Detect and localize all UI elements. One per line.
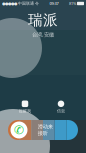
staticText: 09:37 <box>49 1 58 6</box>
staticText: 提醒我 <box>19 108 31 113</box>
staticText: 台湾, 安徽 <box>32 31 54 38</box>
staticText: ✆ <box>14 123 24 137</box>
staticText: 瑞派 <box>28 11 58 29</box>
button[interactable]: 信息 <box>47 100 75 114</box>
staticText: 81% <box>69 1 76 6</box>
button[interactable]: Slide to answer <box>8 120 78 140</box>
button[interactable]: 提醒我 <box>11 100 39 114</box>
staticText: 滑动来接听 <box>38 123 53 136</box>
staticText: 信息 <box>57 108 65 113</box>
staticText: ●●●●● 中国联通 令 <box>2 1 39 6</box>
